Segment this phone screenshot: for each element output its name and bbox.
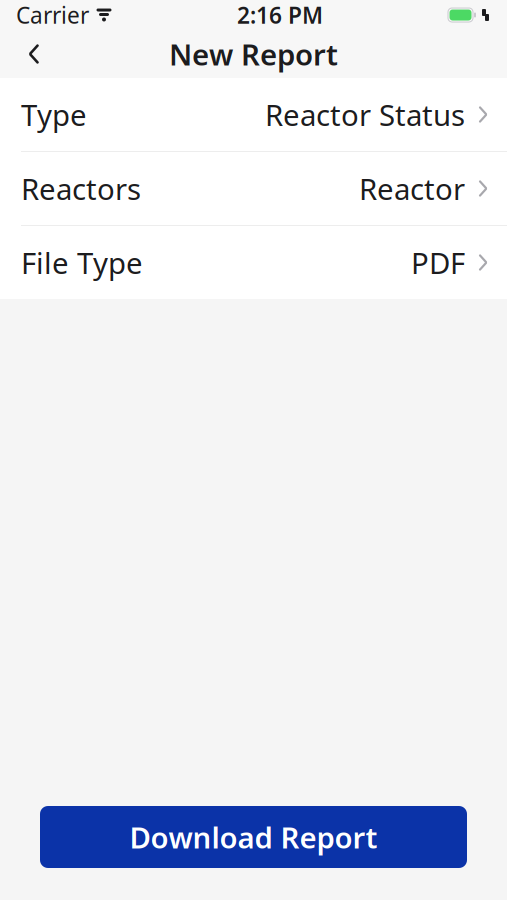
- staticText: Carrier: [16, 0, 89, 30]
- staticText: Type: [21, 95, 87, 134]
- staticText: Reactor Status: [265, 95, 465, 134]
- staticText: Reactors: [21, 169, 141, 208]
- staticText: Download Report: [129, 817, 377, 856]
- button[interactable]: Reactors: [0, 152, 507, 225]
- staticText: Reactor: [359, 169, 465, 208]
- staticText: 2:16 PM: [237, 0, 323, 30]
- staticText: New Report: [169, 34, 338, 73]
- staticText: File Type: [21, 243, 143, 282]
- button[interactable]: Back: [12, 32, 56, 76]
- button[interactable]: Download Report: [40, 806, 467, 868]
- button[interactable]: Type: [0, 78, 507, 151]
- button[interactable]: File Type: [0, 226, 507, 299]
- staticText: PDF: [411, 243, 465, 282]
